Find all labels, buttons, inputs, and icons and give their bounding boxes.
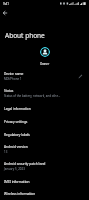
staticText: Wireless information [4,192,36,196]
staticText: IMEI information [4,180,30,184]
staticText: Android security patch level [4,162,46,166]
button[interactable]: Status [0,85,89,102]
staticText: January 5, 2023 [4,167,25,171]
staticText: 9:41 [3,2,9,6]
button[interactable]: Legal information [0,102,89,115]
staticText: Regulatory labels [4,133,30,137]
button[interactable]: Android security patch level [0,158,89,175]
button[interactable]: Android version [0,141,89,158]
staticText: Status of the battery, network, and othe… [4,94,61,98]
staticText: About phone [5,31,45,40]
staticText: Owner [40,62,50,66]
staticText: 13 [4,150,8,154]
staticText: Device name [4,72,24,76]
staticText: Android version [4,145,28,149]
button[interactable]: Wireless information [0,188,89,200]
button[interactable]: Navigate up [0,7,10,18]
staticText: MIX/Phone 1 [4,77,22,81]
button[interactable]: Owner profile [40,47,50,57]
button[interactable]: Device name [0,68,89,85]
button[interactable]: Privacy settings [0,115,89,128]
button[interactable]: Regulatory labels [0,128,89,141]
staticText: Privacy settings [4,120,28,124]
staticText: Legal information [4,107,31,111]
button[interactable]: IMEI information [0,175,89,188]
staticText: Status [4,89,14,93]
